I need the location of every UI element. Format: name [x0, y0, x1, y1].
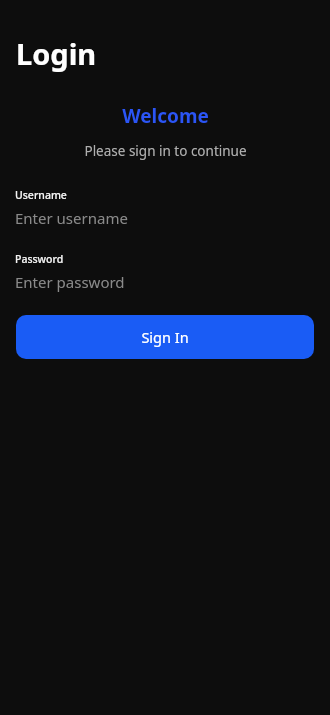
staticText: Please sign in to continue	[84, 142, 247, 160]
staticText: Enter password	[15, 272, 125, 292]
button[interactable]: Username	[0, 188, 330, 228]
button[interactable]: Password	[0, 252, 330, 292]
staticText: Enter username	[15, 208, 128, 228]
staticText: Login	[16, 34, 97, 73]
staticText: Username	[15, 188, 67, 202]
button[interactable]: Sign In	[16, 315, 314, 359]
staticText: Welcome	[122, 103, 209, 129]
staticText: Sign In	[141, 327, 189, 347]
staticText: Password	[15, 252, 64, 266]
